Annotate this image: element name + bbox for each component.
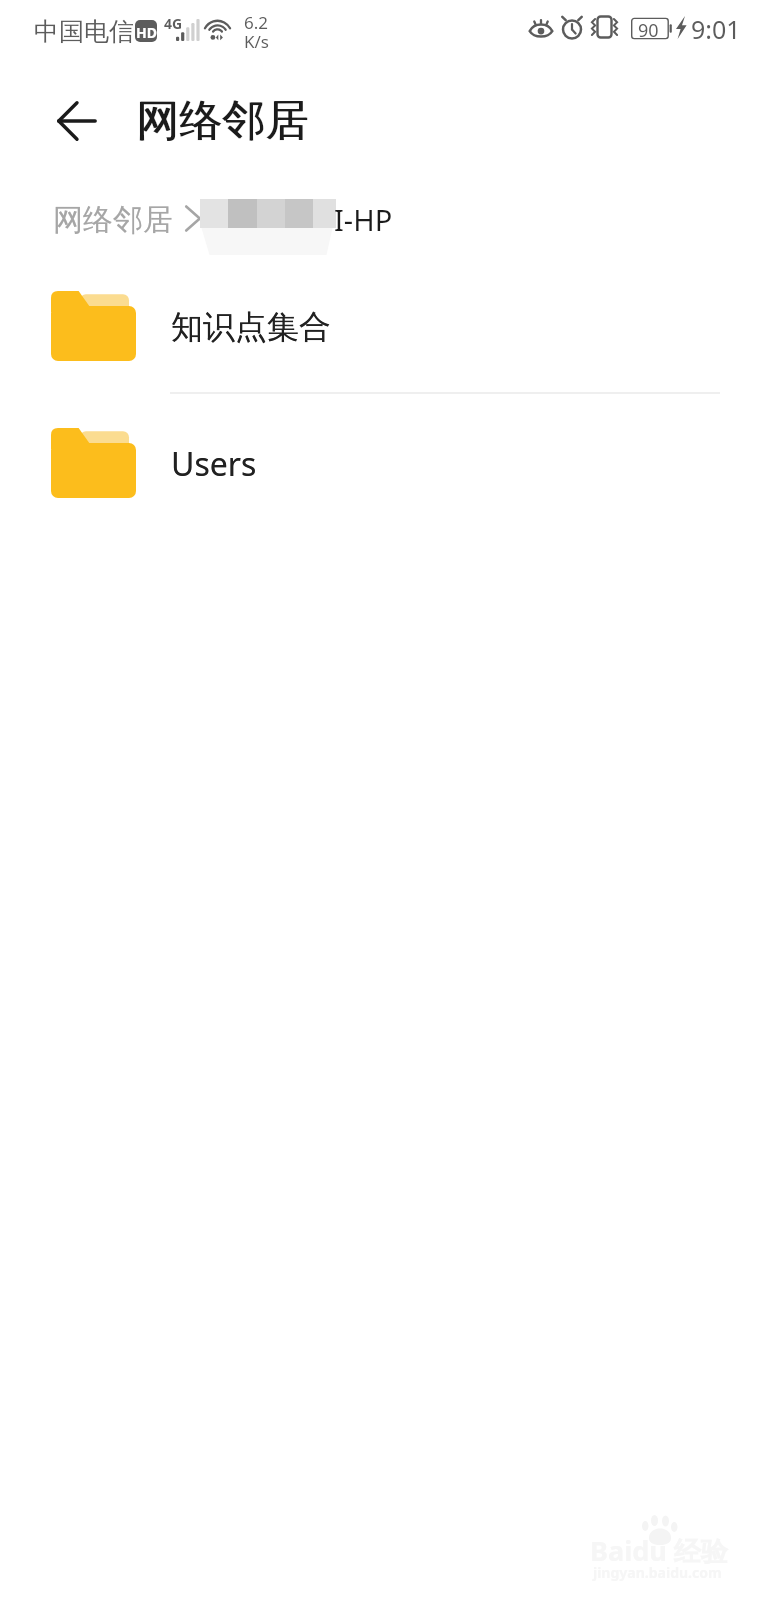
staticText: Users (171, 442, 257, 486)
staticText: I-HP (334, 200, 393, 239)
button[interactable]: Users (0, 395, 770, 532)
button[interactable]: Back (41, 88, 113, 154)
staticText: 网络邻居 (136, 94, 308, 148)
staticText: 知识点集合 (171, 307, 331, 347)
staticText: 9:01 (691, 12, 741, 46)
staticText: Users (171, 442, 257, 486)
staticText: 网络邻居 (53, 201, 173, 239)
button[interactable] (198, 192, 394, 240)
staticText: 中国电信 (34, 16, 134, 47)
staticText: 90 (638, 18, 659, 41)
staticText: 知识点集合 (171, 307, 331, 347)
staticText: 4G (164, 14, 183, 33)
staticText: 6.2 (244, 11, 269, 34)
staticText: jingyan.baidu.com (593, 1563, 722, 1582)
staticText: K/s (244, 30, 269, 53)
staticText: Baidu 经验 (590, 1532, 728, 1569)
staticText: HD (136, 23, 157, 42)
staticText: 网络邻居 (137, 94, 309, 148)
button[interactable]: 知识点集合 (0, 258, 770, 395)
button[interactable]: 网络邻居 (45, 190, 179, 246)
